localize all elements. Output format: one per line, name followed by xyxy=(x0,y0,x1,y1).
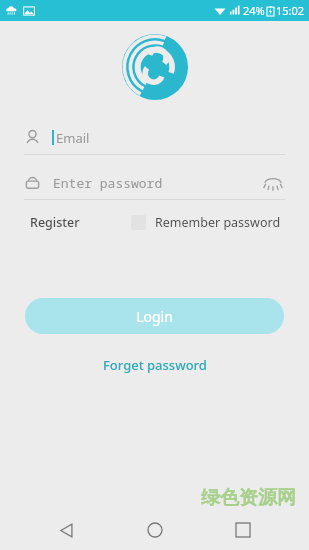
staticText: 24% xyxy=(243,3,265,18)
button[interactable]: Remember password xyxy=(131,211,281,234)
staticText: 15:02 xyxy=(276,3,305,18)
button[interactable]: Show password xyxy=(261,171,285,195)
button[interactable]: Back xyxy=(43,510,89,550)
staticText: Login xyxy=(136,307,173,326)
button[interactable]: Recent apps xyxy=(220,510,266,550)
staticText: 绿色资源网 xyxy=(201,486,296,510)
button[interactable]: Register xyxy=(28,210,82,235)
button[interactable]: Forget password xyxy=(93,352,217,378)
button[interactable]: Enter password xyxy=(24,166,285,200)
button[interactable]: Email xyxy=(24,121,285,155)
button[interactable]: Login xyxy=(25,298,284,334)
staticText: www.downcc.com xyxy=(193,510,303,528)
button[interactable]: Home xyxy=(132,510,178,550)
staticText: Enter password xyxy=(53,174,163,192)
staticText: Email xyxy=(56,129,90,147)
staticText: Remember password xyxy=(155,214,281,231)
